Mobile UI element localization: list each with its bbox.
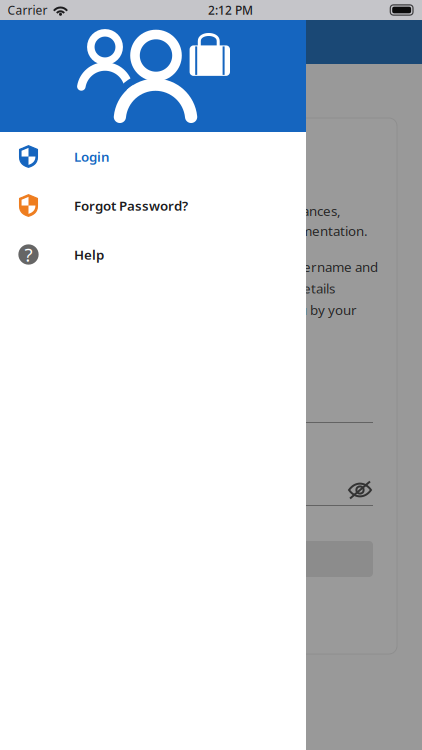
staticText: To sign in, please enter your corporate …	[49, 258, 378, 276]
staticText: ?	[24, 242, 32, 267]
button[interactable]: Login	[0, 132, 306, 181]
staticText: as well as all of the newest company doc…	[49, 222, 368, 240]
staticText: of these will have been given direct to …	[49, 301, 357, 319]
staticText: requests, notices, documents and pay bal…	[49, 202, 341, 220]
staticText: Forgot Password?	[74, 197, 188, 214]
staticText: Login	[74, 148, 110, 165]
staticText: Welcome to the Employee Self Service	[49, 161, 284, 179]
staticText: Help	[74, 246, 104, 263]
button[interactable]: ?	[0, 230, 306, 279]
staticText: Carrier	[7, 2, 47, 18]
button[interactable]: Forgot Password?	[0, 181, 306, 230]
staticText: password that was originally issued. The…	[49, 279, 335, 297]
staticText: 2:12 PM	[208, 2, 253, 18]
